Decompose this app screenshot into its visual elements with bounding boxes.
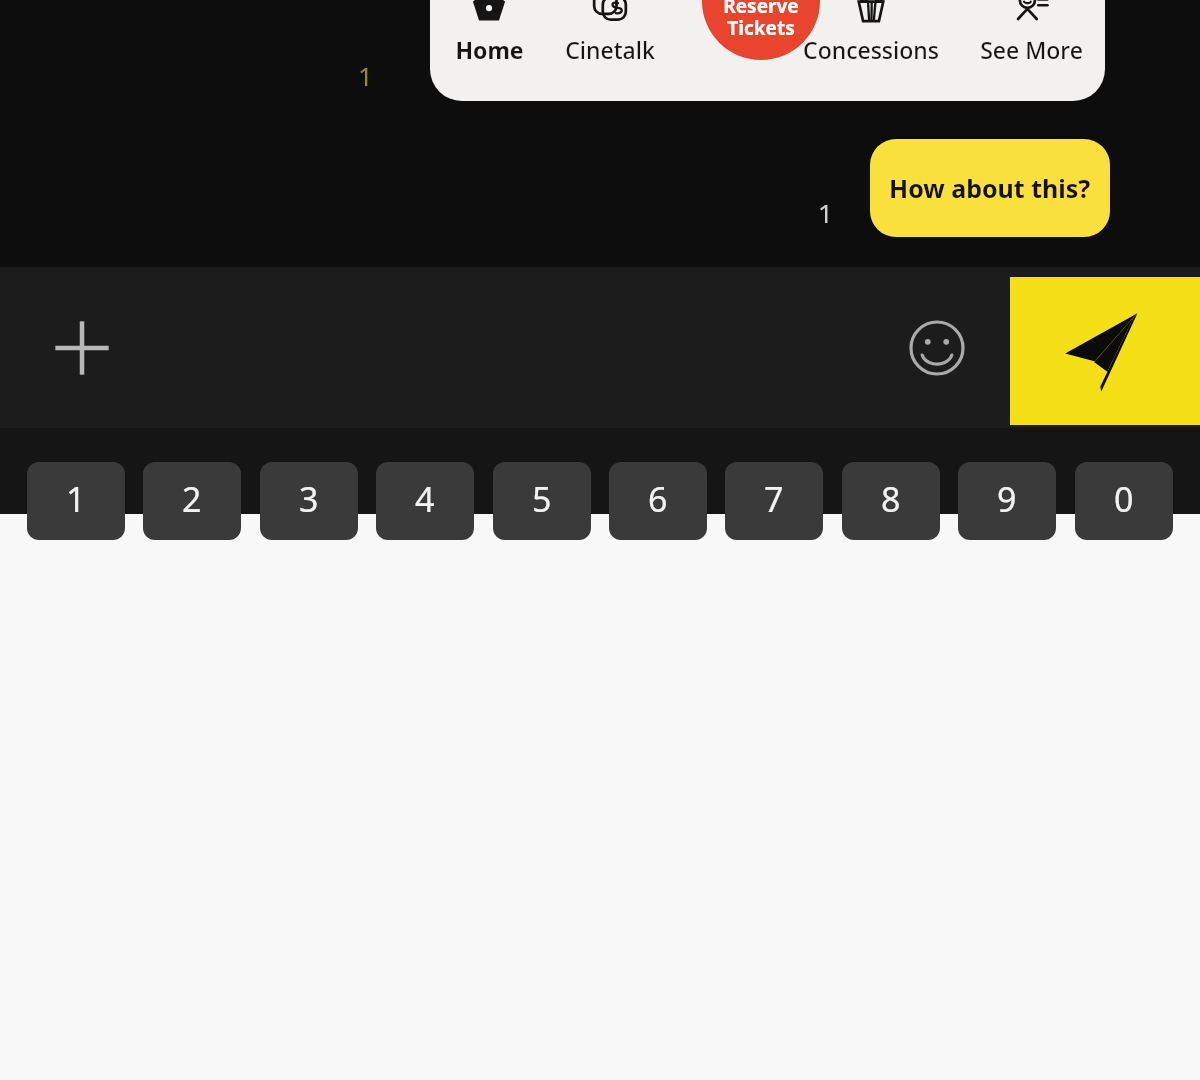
staticText: 2 — [182, 476, 202, 522]
staticText: 1 — [818, 195, 833, 230]
staticText: 9 — [997, 476, 1017, 522]
button[interactable]: Add attachment — [40, 306, 124, 390]
staticText: Concessions — [803, 34, 939, 65]
button[interactable]: 6 — [609, 462, 707, 540]
staticText: 7 — [764, 476, 784, 522]
button[interactable]: Cinetalk — [548, 0, 672, 101]
button[interactable]: 8 — [842, 462, 940, 540]
staticText: 3 — [299, 476, 319, 522]
staticText: 4 — [415, 476, 435, 522]
button[interactable]: 9 — [958, 462, 1056, 540]
button[interactable]: How about this? — [870, 139, 1110, 237]
button[interactable]: 0 — [1075, 462, 1173, 540]
button[interactable]: Send — [1010, 277, 1200, 425]
button[interactable]: 1 — [27, 462, 125, 540]
button[interactable]: See More — [957, 0, 1105, 101]
staticText: 1 — [358, 58, 373, 93]
button[interactable]: Concessions — [785, 0, 957, 101]
staticText: 1 — [66, 476, 86, 522]
button[interactable]: Emoji — [898, 309, 976, 387]
staticText: Cinetalk — [565, 34, 655, 65]
button[interactable]: Home — [430, 0, 548, 101]
button[interactable]: 7 — [725, 462, 823, 540]
button[interactable]: Reserve Tickets — [702, 0, 820, 60]
button[interactable]: 3 — [260, 462, 358, 540]
button[interactable]: 2 — [143, 462, 241, 540]
staticText: 5 — [532, 476, 552, 522]
staticText: 8 — [881, 476, 901, 522]
staticText: Home — [455, 34, 524, 65]
staticText: See More — [980, 34, 1083, 65]
button[interactable]: 5 — [493, 462, 591, 540]
staticText: 6 — [648, 476, 668, 522]
staticText: 0 — [1114, 476, 1134, 522]
button[interactable]: 4 — [376, 462, 474, 540]
staticText: How about this? — [889, 171, 1091, 205]
staticText: Reserve Tickets — [723, 0, 799, 41]
